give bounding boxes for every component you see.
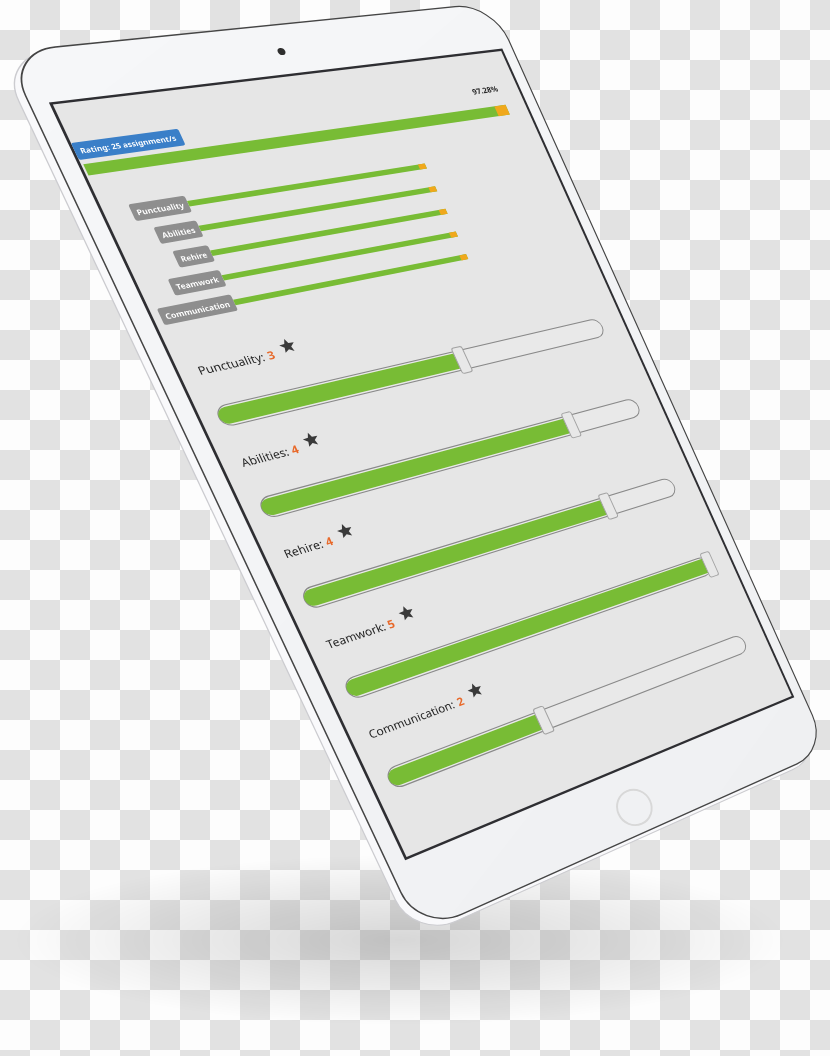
button[interactable]: Rating assignments tablet preview [0, 0, 830, 1056]
